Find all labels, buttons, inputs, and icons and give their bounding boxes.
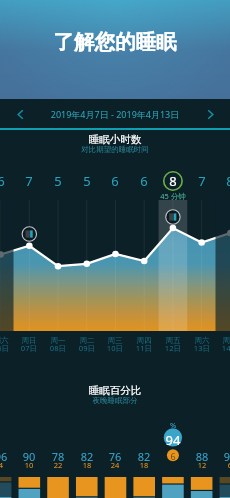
staticText: 周二 bbox=[72, 336, 102, 346]
staticText: 周三 bbox=[100, 336, 130, 346]
staticText: 6 bbox=[159, 450, 187, 462]
staticText: 周日 bbox=[14, 336, 44, 346]
staticText: 10 bbox=[15, 460, 43, 470]
button[interactable]: Previous week bbox=[6, 102, 34, 126]
staticText: 睡眠百分比 bbox=[45, 384, 185, 397]
staticText: 4 bbox=[0, 460, 15, 470]
staticText: 8 bbox=[159, 172, 187, 190]
staticText: 7 bbox=[15, 172, 43, 190]
staticText: 2019年4月7日 - 2019年4月13日 bbox=[20, 108, 210, 120]
staticText: 周五 bbox=[158, 336, 188, 346]
staticText: 96 bbox=[216, 449, 230, 464]
staticText: 夜晚睡眠部分 bbox=[35, 396, 195, 405]
staticText: 18 bbox=[73, 460, 101, 470]
staticText: 了解您的睡眠 bbox=[0, 29, 230, 55]
staticText: 12日 bbox=[158, 343, 188, 353]
staticText: 24 bbox=[101, 460, 129, 470]
staticText: 5 bbox=[44, 172, 72, 190]
staticText: 45 分钟 bbox=[148, 191, 198, 201]
staticText: 11日 bbox=[129, 343, 159, 353]
staticText: 6 bbox=[130, 172, 158, 190]
staticText: 睡眠小时数 bbox=[45, 133, 185, 146]
staticText: 78 bbox=[44, 449, 72, 464]
staticText: 07日 bbox=[14, 343, 44, 353]
staticText: 88 bbox=[188, 449, 216, 464]
staticText: 6 bbox=[0, 172, 15, 190]
staticText: 周六 bbox=[0, 336, 16, 346]
staticText: 对比期望的睡眠时间 bbox=[35, 145, 195, 154]
staticText: 09日 bbox=[72, 343, 102, 353]
staticText: 周四 bbox=[129, 336, 159, 346]
staticText: 22 bbox=[44, 460, 72, 470]
button[interactable]: Next week bbox=[196, 102, 224, 126]
staticText: 14日 bbox=[215, 343, 230, 353]
staticText: 8 bbox=[216, 172, 230, 190]
staticText: 6 bbox=[216, 460, 230, 470]
staticText: 82 bbox=[73, 449, 101, 464]
staticText: 96 bbox=[0, 449, 15, 464]
staticText: 5 bbox=[73, 172, 101, 190]
staticText: 18 bbox=[130, 460, 158, 470]
staticText: 08日 bbox=[43, 343, 73, 353]
staticText: 7 bbox=[188, 172, 216, 190]
staticText: 周日 bbox=[215, 336, 230, 346]
staticText: 76 bbox=[101, 449, 129, 464]
staticText: 12 bbox=[188, 460, 216, 470]
staticText: 10日 bbox=[100, 343, 130, 353]
staticText: 13日 bbox=[187, 343, 217, 353]
staticText: 06日 bbox=[0, 343, 16, 353]
staticText: 周一 bbox=[43, 336, 73, 346]
staticText: 90 bbox=[15, 449, 43, 464]
staticText: 6 bbox=[101, 172, 129, 190]
staticText: 82 bbox=[130, 449, 158, 464]
staticText: 94 bbox=[159, 431, 187, 449]
staticText: 周六 bbox=[187, 336, 217, 346]
staticText: % bbox=[159, 420, 187, 430]
